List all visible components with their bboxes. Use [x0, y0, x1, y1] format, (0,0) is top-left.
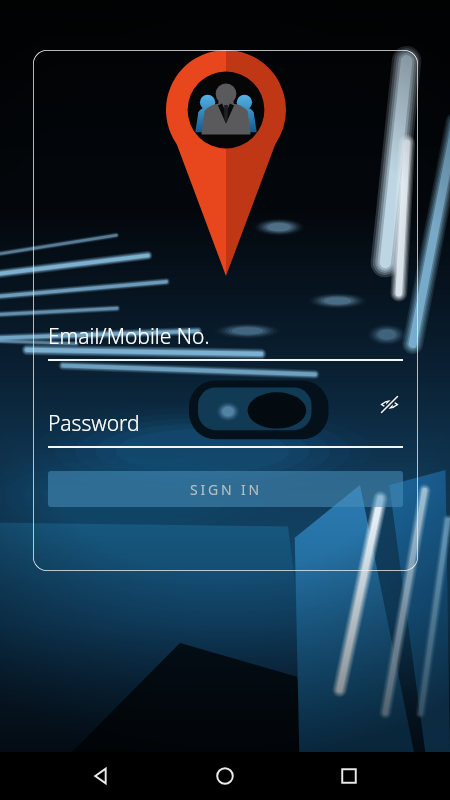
button[interactable]: Recent apps [336, 763, 362, 789]
button[interactable]: Home [212, 763, 238, 789]
button[interactable]: Back [88, 763, 114, 789]
button[interactable]: Email/Mobile No. [48, 322, 403, 361]
button[interactable]: Password [48, 409, 403, 448]
button[interactable]: SIGN IN [48, 471, 403, 507]
staticText: Password [48, 409, 140, 438]
button[interactable]: Show password [372, 387, 406, 421]
staticText: Email/Mobile No. [48, 322, 210, 351]
staticText: SIGN IN [190, 480, 262, 499]
